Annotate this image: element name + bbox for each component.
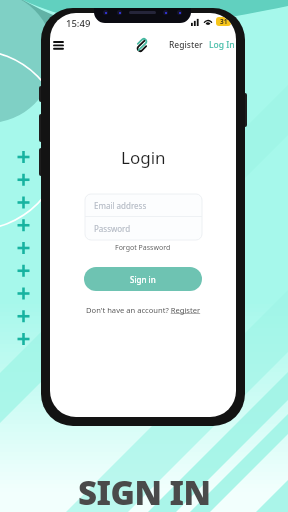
staticText: Log In — [209, 39, 235, 51]
staticText: 15:49 — [66, 17, 91, 30]
button[interactable]: Sign in — [84, 267, 202, 291]
staticText: Sign in — [130, 274, 156, 285]
button[interactable]: Password — [85, 217, 202, 240]
staticText: Password — [94, 223, 131, 234]
staticText: Register — [169, 39, 203, 51]
staticText: Login — [121, 146, 166, 169]
staticText: SIGN IN — [78, 470, 211, 512]
button[interactable]: Email address — [85, 194, 202, 216]
staticText: Email address — [94, 200, 147, 211]
button[interactable]: Register — [169, 39, 203, 51]
staticText: 31 — [220, 17, 228, 26]
button[interactable]: Log In — [209, 39, 235, 51]
button[interactable]: Menu — [51, 38, 65, 52]
button[interactable]: Forgot Password — [115, 243, 171, 253]
staticText: Forgot Password — [115, 243, 171, 253]
button[interactable]: Don't have an account? Register — [86, 305, 201, 315]
staticText: Don't have an account? Register — [86, 305, 201, 315]
